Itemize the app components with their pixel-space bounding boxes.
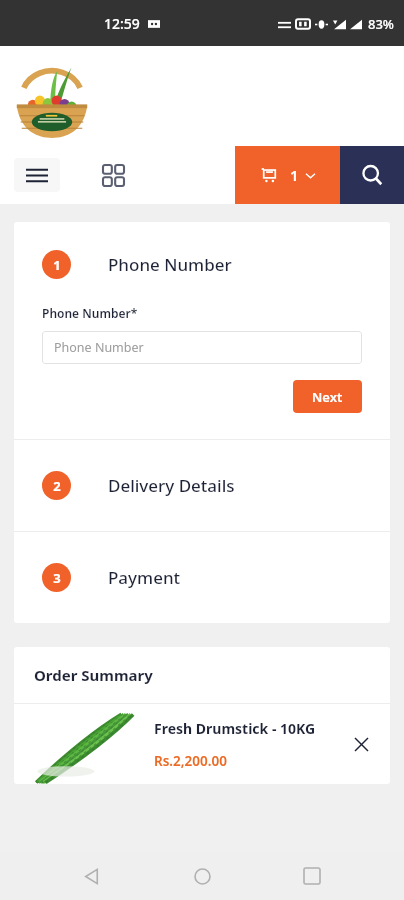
staticText: Phone Number [54, 339, 144, 356]
staticText: 83% [368, 15, 394, 33]
staticText: Order Summary [34, 665, 153, 685]
staticText: Payment [108, 566, 181, 589]
button[interactable]: 3 [14, 532, 390, 623]
button[interactable]: Recent apps [284, 852, 340, 900]
staticText: Fresh Drumstick - 10KG [154, 719, 316, 738]
staticText: 12:59 [104, 14, 140, 33]
button[interactable]: Fresh Drumstick - 10KG [14, 704, 390, 784]
staticText: 1 [290, 165, 299, 185]
staticText: Rs.2,200.00 [154, 752, 227, 770]
staticText: Next [312, 388, 343, 406]
button[interactable]: Categories [96, 158, 130, 192]
button[interactable]: Back [64, 852, 120, 900]
button[interactable]: 1 [14, 222, 390, 439]
button[interactable]: Phone Number [42, 331, 362, 364]
button[interactable]: Store logo [8, 54, 96, 138]
staticText: Phone Number [108, 253, 232, 276]
staticText: 3 [53, 569, 61, 587]
button[interactable]: Search [340, 146, 404, 204]
staticText: Delivery Details [108, 474, 235, 497]
staticText: 2 [53, 477, 61, 495]
button[interactable]: Next [293, 380, 362, 413]
staticText: 1 [53, 256, 61, 274]
button[interactable]: 2 [14, 440, 390, 531]
button[interactable]: Home [174, 852, 230, 900]
button[interactable]: Remove item [344, 727, 378, 761]
button[interactable]: Menu [14, 158, 60, 192]
button[interactable]: 1 [235, 146, 340, 204]
staticText: Phone Number* [42, 305, 138, 321]
